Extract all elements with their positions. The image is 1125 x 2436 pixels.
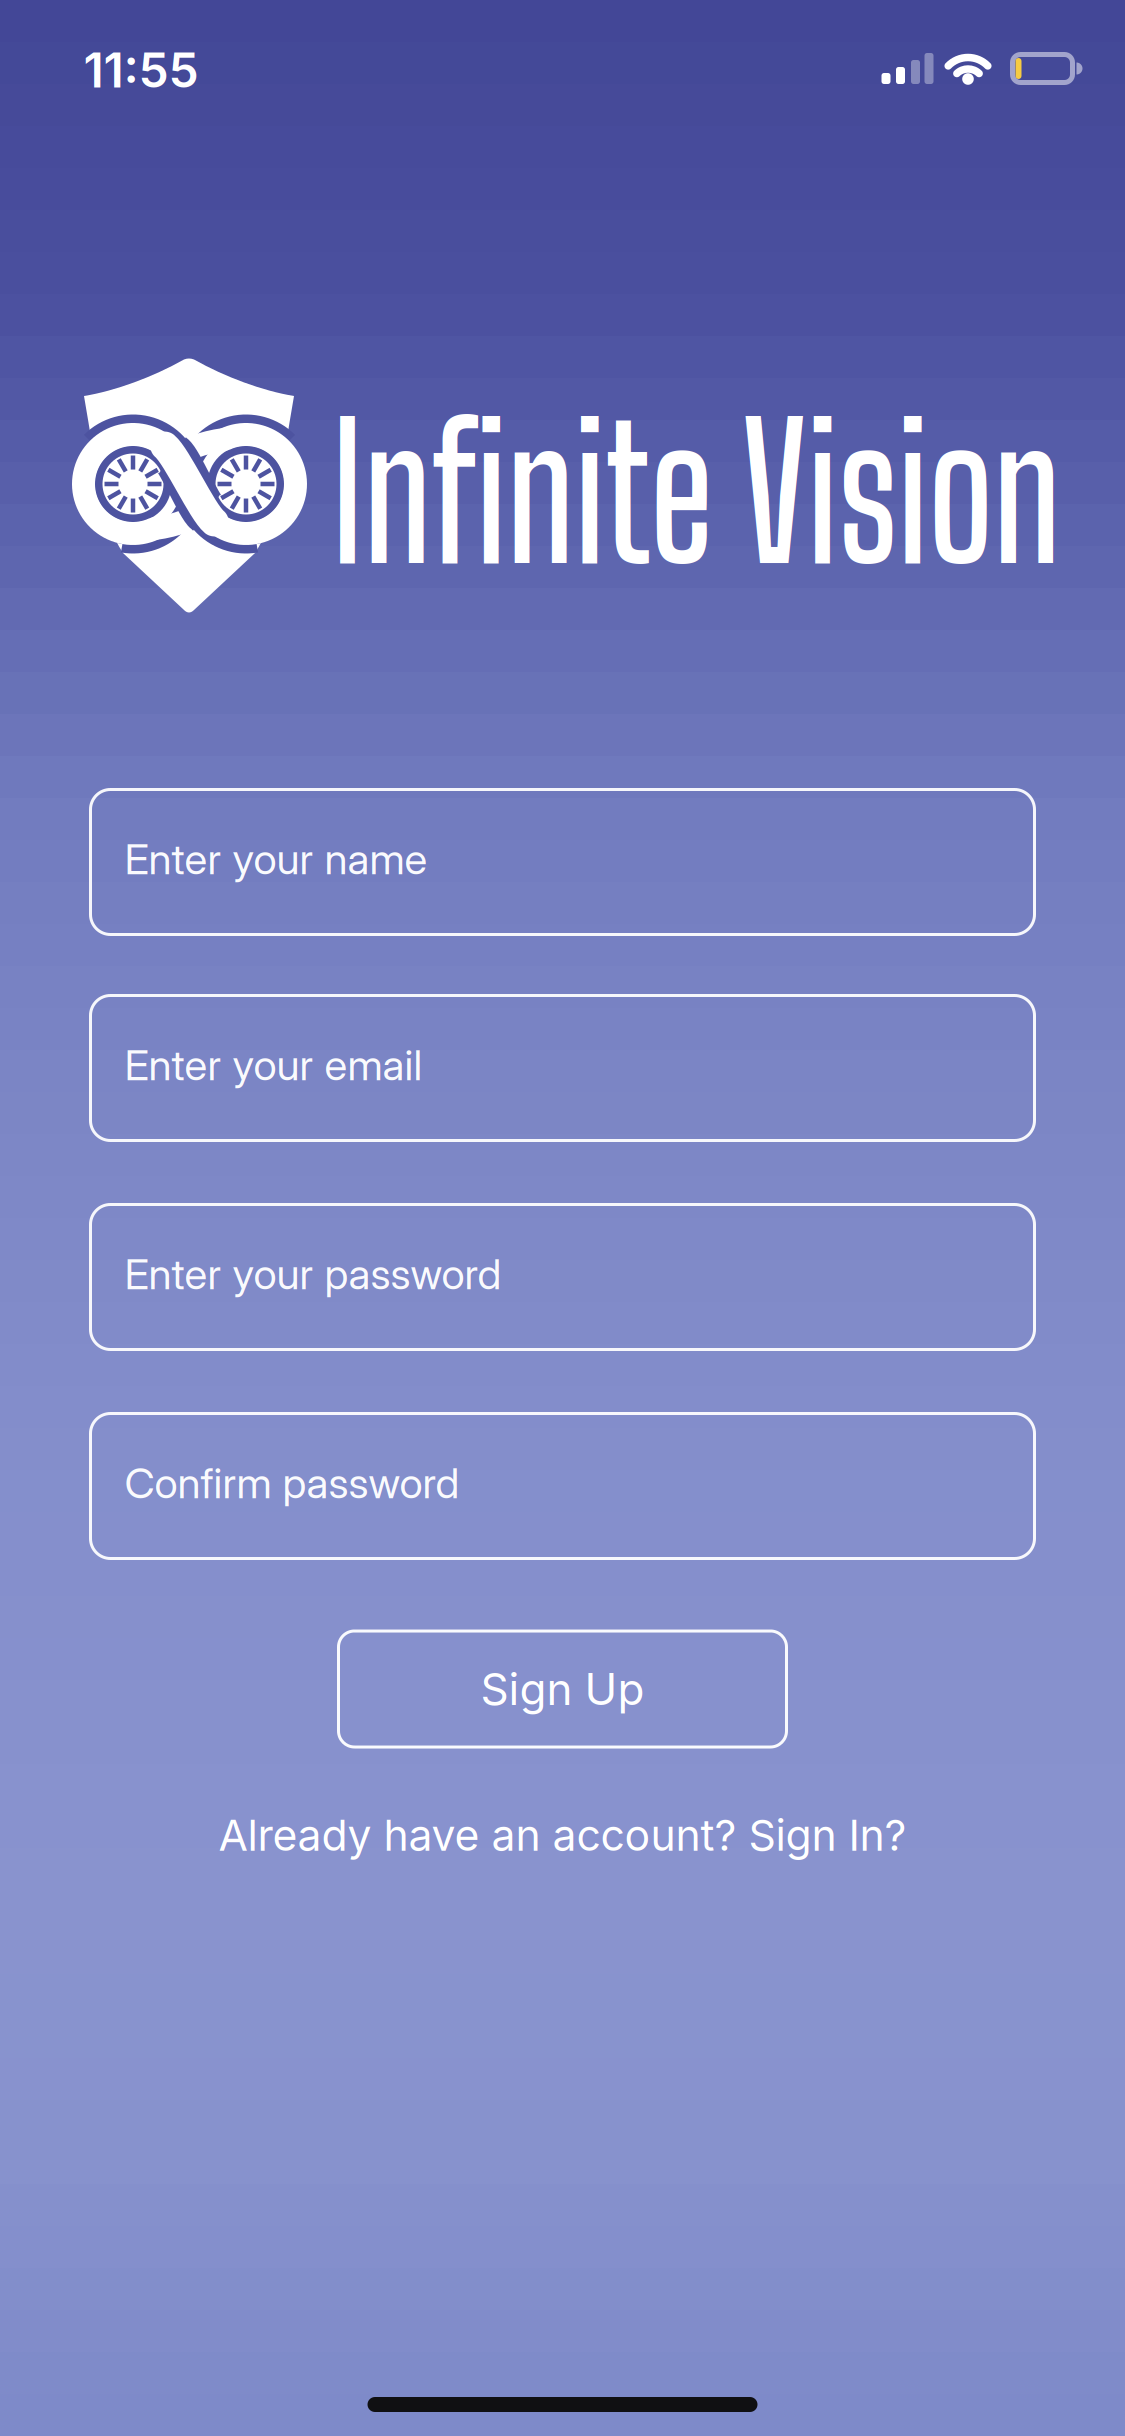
- button[interactable]: Confirm password: [90, 1413, 1034, 1558]
- staticText: Confirm password: [124, 1458, 459, 1508]
- button[interactable]: Enter your password: [90, 1204, 1034, 1349]
- staticText: Enter your email: [124, 1040, 422, 1090]
- button[interactable]: Sign Up: [338, 1631, 786, 1747]
- button[interactable]: Already have an account? Sign In?: [218, 1809, 906, 1872]
- button[interactable]: Enter your name: [90, 789, 1034, 934]
- staticText: Enter your name: [124, 834, 427, 884]
- staticText: 11:55: [83, 41, 198, 99]
- staticText: Already have an account? Sign In?: [218, 1809, 906, 1861]
- staticText: Infinite Vision: [254, 382, 1125, 602]
- staticText: Enter your password: [124, 1249, 501, 1299]
- button[interactable]: Enter your email: [90, 995, 1034, 1140]
- staticText: Sign Up: [480, 1662, 644, 1716]
